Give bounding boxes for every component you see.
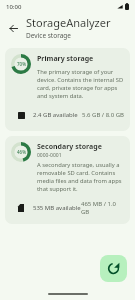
staticText: Secondary storage [37,142,102,152]
staticText: Primary storage [37,54,94,64]
staticText: 465 MB / 1.0 GB [81,200,124,216]
button[interactable]: 46% [5,136,130,224]
staticText: 46% [17,149,26,155]
staticText: 70% [17,61,26,67]
staticText: 5.6 GB / 8.0 GB [82,111,124,119]
staticText: 0000-0001 [37,152,62,159]
staticText: 10:00 [6,3,22,11]
button[interactable]: Back [4,19,22,37]
staticText: StorageAnalyzer [26,15,111,30]
staticText: 535 MB available [33,204,81,212]
staticText: A secondary storage, usually a removable… [37,161,124,193]
staticText: The primary storage of your device. Cont… [37,68,124,100]
button[interactable]: Refresh [100,255,127,282]
staticText: 2.4 GB available [33,111,78,119]
button[interactable]: 70% [5,48,130,131]
staticText: Device storage [26,31,71,40]
